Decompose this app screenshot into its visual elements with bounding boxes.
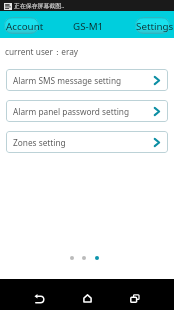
staticText: Zones setting	[13, 137, 66, 148]
staticText: 正在保存屏幕截图..	[14, 2, 65, 10]
staticText: Alarm panel password setting	[13, 106, 130, 117]
button[interactable]: Page indicator	[95, 256, 99, 260]
staticText: Account	[6, 20, 44, 33]
button[interactable]: Recents	[119, 279, 151, 310]
staticText: Alarm SMS message setting	[13, 75, 122, 86]
button[interactable]	[4, 17, 39, 34]
staticText: GS-M1	[73, 20, 104, 33]
button[interactable]: Home	[71, 279, 103, 310]
button[interactable]: Zones setting	[6, 131, 168, 153]
button[interactable]: Page indicator	[70, 256, 74, 260]
button[interactable]: Back	[23, 279, 55, 310]
button[interactable]: Page indicator	[82, 256, 86, 260]
staticText: Settings	[136, 20, 174, 33]
button[interactable]: Alarm panel password setting	[6, 100, 168, 122]
button[interactable]	[135, 17, 170, 34]
staticText: current user：eray	[5, 46, 79, 57]
button[interactable]: Alarm SMS message setting	[6, 69, 168, 91]
